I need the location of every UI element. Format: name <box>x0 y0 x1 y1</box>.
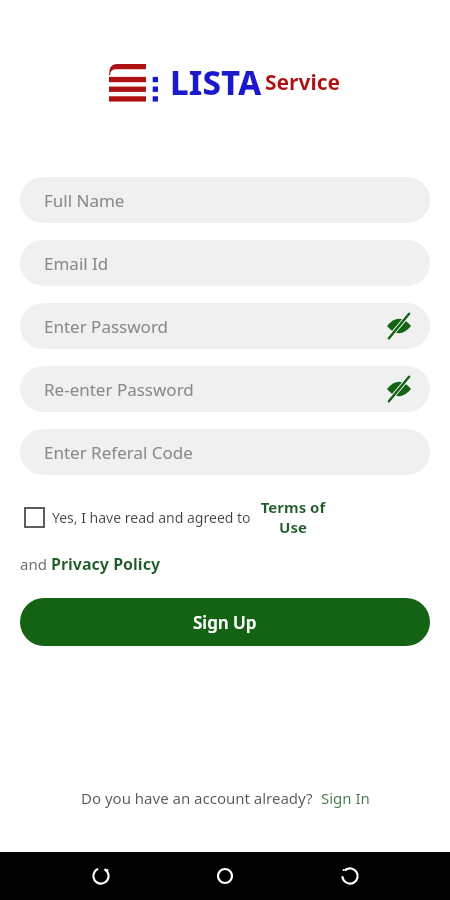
staticText: LISTA <box>170 60 262 105</box>
staticText: Terms of Use <box>257 497 329 537</box>
staticText: Service <box>265 68 341 97</box>
button[interactable]: Full Name <box>20 177 430 223</box>
button[interactable]: Back <box>77 852 125 900</box>
button[interactable]: Sign Up <box>20 598 430 646</box>
button[interactable]: Enter Referal Code <box>20 429 430 475</box>
button[interactable]: Toggle password visibility <box>384 374 414 404</box>
button[interactable]: Sign In <box>321 788 370 808</box>
staticText: Enter Referal Code <box>44 441 414 464</box>
staticText: Sign In <box>321 788 370 808</box>
button[interactable]: Home <box>201 852 249 900</box>
button[interactable]: Privacy Policy <box>51 553 161 575</box>
staticText: Privacy Policy <box>51 553 161 575</box>
button[interactable]: Terms of Use <box>257 497 329 537</box>
staticText: and <box>20 554 51 574</box>
button[interactable]: Recent apps <box>326 852 374 900</box>
button[interactable]: Toggle password visibility <box>384 311 414 341</box>
staticText: Email Id <box>44 252 414 275</box>
button[interactable]: Re-enter Password <box>20 366 430 412</box>
staticText: Enter Password <box>44 315 384 338</box>
staticText: Full Name <box>44 189 414 212</box>
button[interactable]: Agree to terms <box>20 503 48 531</box>
staticText: Do you have an account already? <box>81 788 313 808</box>
button[interactable]: Enter Password <box>20 303 430 349</box>
staticText: Yes, I have read and agreed to <box>52 508 251 527</box>
button[interactable]: Email Id <box>20 240 430 286</box>
staticText: Sign Up <box>193 611 257 634</box>
staticText: Re-enter Password <box>44 378 384 401</box>
